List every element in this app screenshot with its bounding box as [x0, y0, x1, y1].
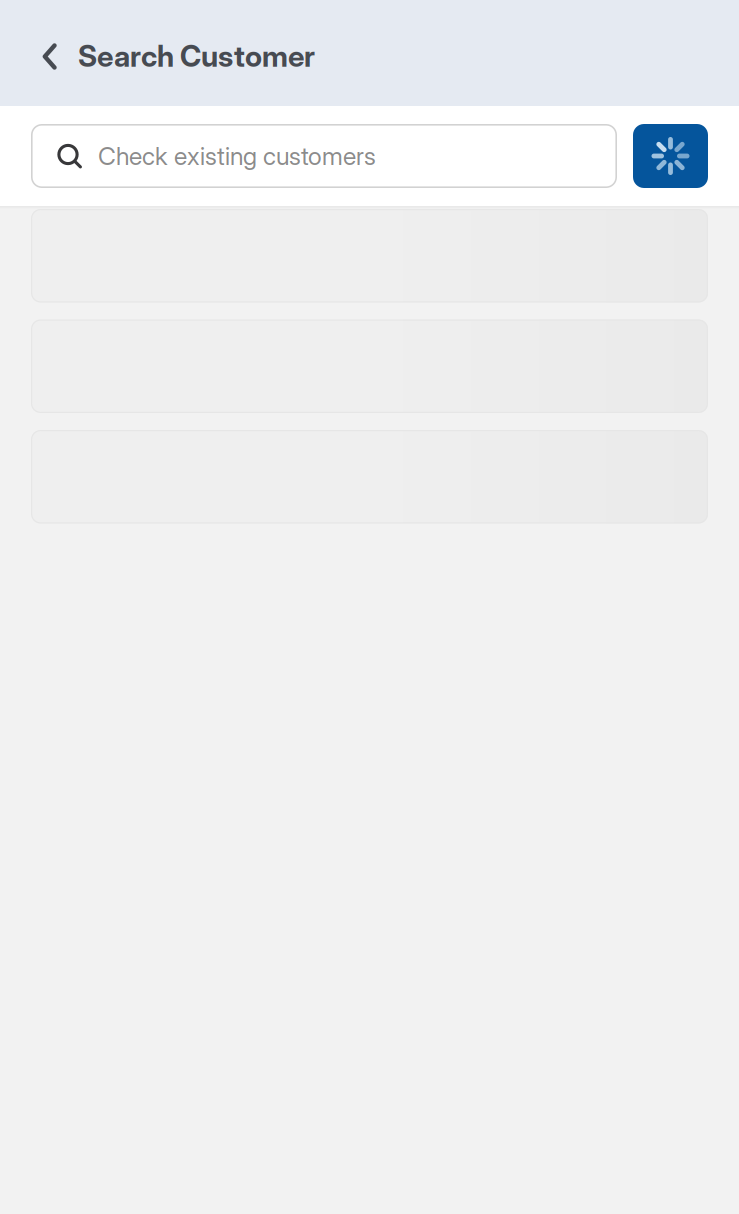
- button[interactable]: Check existing customers: [31, 124, 617, 188]
- button[interactable]: Searching: [633, 124, 708, 188]
- staticText: Search Customer: [78, 38, 315, 74]
- button[interactable]: Search Customer: [0, 0, 335, 106]
- staticText: Check existing customers: [98, 141, 376, 171]
